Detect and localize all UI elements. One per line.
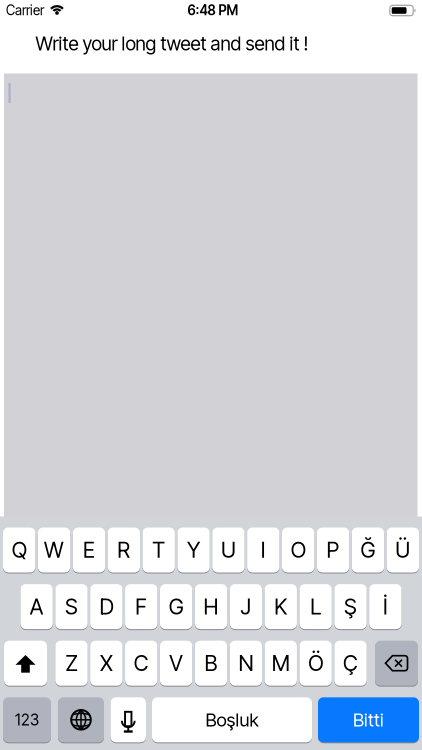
staticText: 6:48 PM [187,2,238,19]
staticText: I [261,537,266,563]
button[interactable]: U [212,527,245,572]
staticText: F [135,594,147,620]
button[interactable]: V [160,641,192,686]
button[interactable]: İ [369,584,402,629]
staticText: 123 [15,710,39,729]
staticText: E [83,537,95,563]
button[interactable]: Ş [334,584,367,629]
staticText: K [274,594,287,620]
staticText: Ğ [360,537,375,563]
button[interactable]: C [125,641,157,686]
button[interactable]: Y [177,527,210,572]
staticText: J [240,594,251,620]
button[interactable]: L [299,584,332,629]
button[interactable]: Z [55,641,88,686]
staticText: Ü [395,537,410,563]
staticText: H [203,594,218,620]
staticText: G [169,594,184,620]
button[interactable]: Ğ [352,527,384,572]
staticText: Boşluk [205,709,258,731]
button[interactable]: 123 [3,697,51,742]
button[interactable]: S [55,584,88,629]
staticText: Ş [344,594,357,620]
button[interactable]: O [282,527,314,572]
staticText: L [310,594,321,620]
staticText: Q [12,537,27,563]
staticText: V [169,650,183,676]
staticText: N [238,650,253,676]
staticText: P [327,537,340,563]
button[interactable]: Ö [299,641,332,686]
button[interactable]: Bitti [318,697,419,742]
button[interactable]: A [20,584,53,629]
staticText: Ö [308,650,323,676]
staticText: C [134,650,149,676]
button[interactable]: B [195,641,227,686]
button[interactable]: K [265,584,297,629]
staticText: Write your long tweet and send it ! [35,32,308,55]
button[interactable]: T [142,527,175,572]
staticText: İ [383,594,388,620]
button[interactable]: N [230,641,262,686]
button[interactable]: Ü [387,527,419,572]
staticText: W [44,537,64,563]
staticText: M [272,650,290,676]
staticText: Carrier [6,2,44,19]
button[interactable]: I [247,527,279,572]
button[interactable]: H [195,584,227,629]
staticText: Y [187,537,200,563]
button[interactable]: F [125,584,157,629]
staticText: O [291,537,306,563]
button[interactable]: X [90,641,123,686]
button[interactable]: Ç [334,641,367,686]
button[interactable]: E [73,527,105,572]
button[interactable]: Delete [375,641,418,686]
button[interactable]: R [108,527,140,572]
staticText: B [204,650,217,676]
staticText: X [100,650,113,676]
button[interactable]: D [90,584,123,629]
staticText: T [152,537,165,563]
button[interactable]: Next keyboard [58,697,104,742]
staticText: S [65,594,78,620]
button[interactable]: W [38,527,70,572]
staticText: Z [65,650,77,676]
staticText: Ç [343,650,358,676]
button[interactable]: Q [3,527,35,572]
button[interactable]: G [160,584,192,629]
button[interactable]: J [230,584,262,629]
staticText: A [30,594,44,620]
button[interactable]: M [265,641,297,686]
staticText: Bitti [353,709,384,731]
staticText: D [99,594,113,620]
button[interactable]: P [317,527,349,572]
staticText: R [117,537,130,563]
button[interactable]: Dictate [110,697,146,742]
button[interactable]: Shift [4,641,47,686]
staticText: U [221,537,236,563]
button[interactable]: Boşluk [152,697,312,742]
